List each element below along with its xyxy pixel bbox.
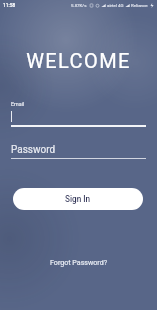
staticText: Sign In xyxy=(65,194,91,204)
button[interactable]: Password xyxy=(0,143,157,163)
button[interactable]: Forgot Password? xyxy=(44,256,114,268)
staticText: 5.87K/s xyxy=(71,3,87,8)
button[interactable]: Sign In xyxy=(13,188,143,210)
staticText: Email xyxy=(11,101,25,107)
staticText: Password xyxy=(11,144,56,156)
staticText: airtel 4G xyxy=(107,3,124,8)
staticText: 11:58 xyxy=(3,3,16,9)
button[interactable]: Email xyxy=(0,99,157,127)
staticText: Reliance xyxy=(131,3,148,8)
staticText: WELCOME xyxy=(0,49,157,72)
